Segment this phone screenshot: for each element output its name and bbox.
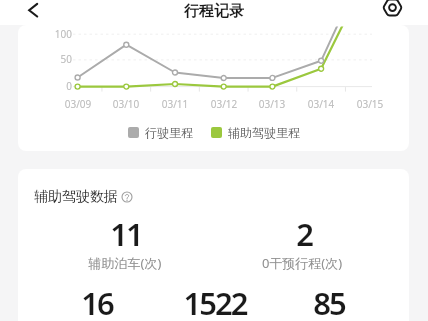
staticText: 行驶里程 bbox=[145, 125, 193, 140]
staticText: 0干预行程(次) bbox=[222, 254, 382, 272]
staticText: 85 bbox=[259, 282, 399, 321]
staticText: 辅助驾驶数据 bbox=[34, 188, 118, 206]
button[interactable] bbox=[380, 0, 405, 22]
staticText: 03/15 bbox=[346, 97, 394, 111]
staticText: 行程记录 bbox=[184, 2, 244, 21]
button[interactable] bbox=[24, 0, 44, 22]
staticText: 0 bbox=[40, 79, 72, 93]
staticText: 03/14 bbox=[297, 97, 345, 111]
staticText: 03/12 bbox=[200, 97, 248, 111]
staticText: 辅助泊车(次) bbox=[45, 254, 205, 272]
staticText: 03/11 bbox=[151, 97, 199, 111]
staticText: 16 bbox=[27, 282, 167, 321]
staticText: 1522 bbox=[145, 282, 285, 321]
staticText: 03/10 bbox=[102, 97, 150, 111]
staticText: 03/09 bbox=[54, 97, 102, 111]
staticText: 03/13 bbox=[248, 97, 296, 111]
staticText: 辅助驾驶里程 bbox=[228, 125, 300, 140]
staticText: 100 bbox=[40, 27, 72, 41]
staticText: 2 bbox=[234, 213, 374, 255]
staticText: 11 bbox=[56, 213, 196, 255]
staticText: 50 bbox=[40, 52, 72, 66]
